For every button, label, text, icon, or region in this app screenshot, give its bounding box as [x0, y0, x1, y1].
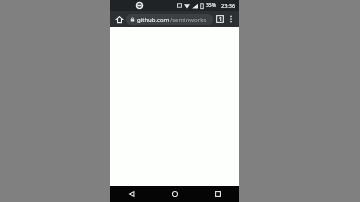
staticText: 23:36: [221, 2, 236, 9]
staticText: 1: [219, 16, 222, 23]
staticText: 35%: [206, 2, 216, 9]
button[interactable]: github.com: [126, 14, 213, 25]
button[interactable]: More options: [226, 14, 236, 24]
staticText: github.com: [137, 16, 170, 24]
button[interactable]: Back: [110, 186, 153, 202]
button[interactable]: Tabs: [214, 13, 226, 25]
button[interactable]: Home: [153, 186, 196, 202]
staticText: /seminworks: [170, 16, 207, 24]
button[interactable]: Recent apps: [196, 186, 239, 202]
button[interactable]: Home: [113, 13, 125, 25]
